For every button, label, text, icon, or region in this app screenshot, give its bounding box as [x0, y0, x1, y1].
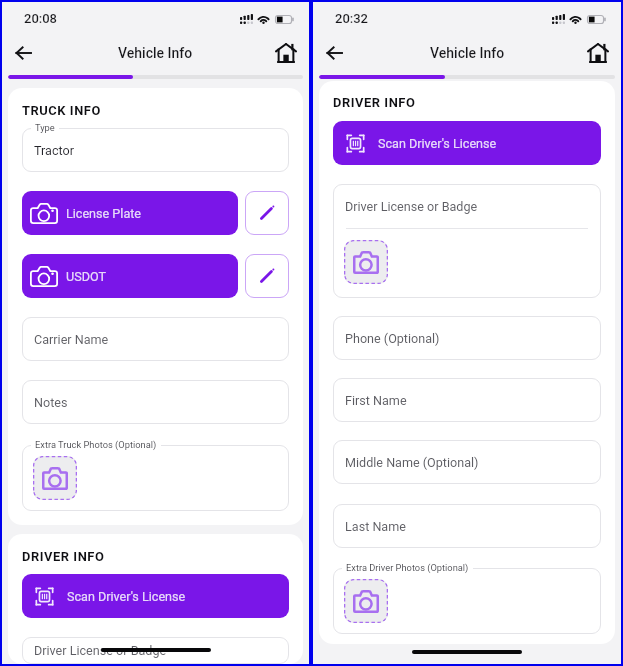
button[interactable]: Add photo — [344, 240, 388, 284]
staticText: DRIVER INFO — [333, 95, 416, 110]
staticText: First Name — [345, 393, 407, 408]
button[interactable]: Middle Name (Optional) — [333, 440, 601, 484]
button[interactable]: Scan Driver's License — [22, 574, 289, 618]
staticText: Middle Name (Optional) — [345, 455, 479, 470]
staticText: Type — [35, 122, 55, 133]
button[interactable]: Edit — [245, 254, 289, 298]
button[interactable]: Scan Driver's License — [333, 121, 601, 165]
staticText: DRIVER INFO — [22, 549, 105, 564]
staticText: USDOT — [66, 269, 106, 284]
staticText: Phone (Optional) — [345, 331, 440, 346]
staticText: Extra Driver Photos (Optional) — [346, 562, 469, 573]
button[interactable]: Home — [583, 38, 613, 68]
staticText: Vehicle Info — [118, 45, 193, 61]
button[interactable]: Edit — [245, 191, 289, 235]
staticText: 20:32 — [335, 11, 369, 26]
button[interactable]: USDOT — [22, 254, 238, 298]
staticText: 20:08 — [24, 11, 58, 26]
button[interactable]: Home — [271, 38, 301, 68]
staticText: Notes — [34, 395, 68, 410]
button[interactable]: Back — [8, 38, 38, 68]
staticText: License Plate — [66, 206, 142, 221]
button[interactable]: Add photo — [33, 456, 77, 500]
staticText: Driver License or Badge — [345, 199, 478, 214]
staticText: Vehicle Info — [430, 45, 505, 61]
button[interactable]: Back — [319, 38, 349, 68]
staticText: Extra Truck Photos (Optional) — [35, 439, 157, 450]
staticText: Last Name — [345, 519, 406, 534]
staticText: TRUCK INFO — [22, 103, 101, 118]
button[interactable]: Notes — [22, 380, 289, 424]
button[interactable]: License Plate — [22, 191, 238, 235]
staticText: Tractor — [34, 143, 74, 158]
button[interactable]: Add photo — [344, 579, 388, 623]
button[interactable]: Driver License or Badge — [22, 637, 289, 664]
staticText: Driver License or Badge — [34, 643, 167, 658]
staticText: Carrier Name — [34, 332, 109, 347]
staticText: Scan Driver's License — [67, 589, 186, 604]
button[interactable]: Carrier Name — [22, 317, 289, 361]
button[interactable]: First Name — [333, 378, 601, 422]
button[interactable]: Phone (Optional) — [333, 316, 601, 360]
button[interactable]: Last Name — [333, 504, 601, 548]
staticText: Scan Driver's License — [378, 136, 497, 151]
button[interactable]: Tractor — [22, 128, 289, 172]
